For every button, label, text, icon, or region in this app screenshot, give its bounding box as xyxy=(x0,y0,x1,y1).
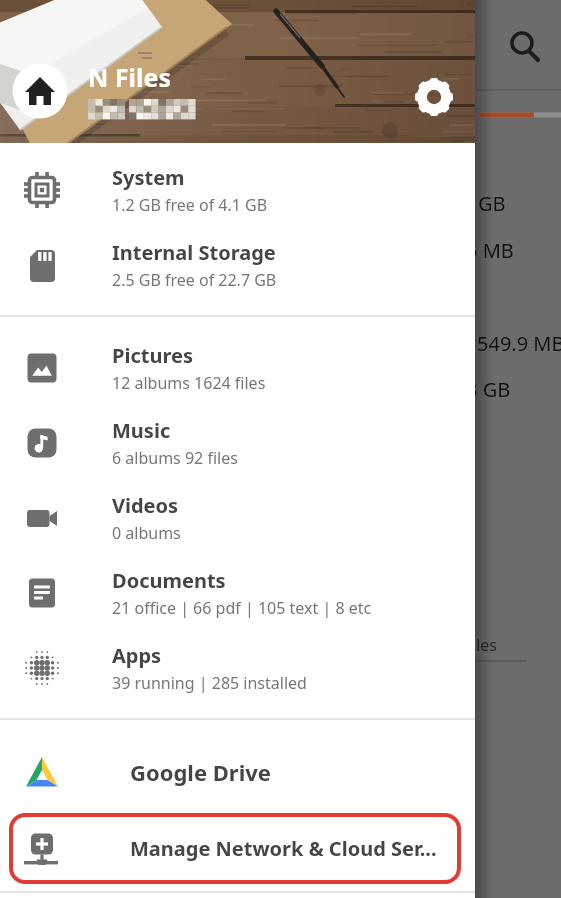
staticText: 5 MB xyxy=(466,237,514,264)
staticText: 2.5 GB free of 22.7 GB xyxy=(112,269,277,291)
button[interactable]: System xyxy=(0,152,475,227)
button[interactable]: Apps xyxy=(0,630,475,705)
staticText: 1.2 GB free of 4.1 GB xyxy=(112,194,268,216)
staticText: System xyxy=(112,164,185,191)
staticText: Documents xyxy=(112,567,226,594)
button[interactable]: N Files xyxy=(0,0,475,143)
staticText: N Files xyxy=(88,60,171,94)
staticText: Google Drive xyxy=(130,757,271,787)
staticText: Videos xyxy=(112,492,179,519)
staticText: 0 albums xyxy=(112,522,181,544)
button[interactable]: Pictures xyxy=(0,330,475,405)
button[interactable]: Google Drive xyxy=(0,736,475,808)
staticText: 39 running | 285 installed xyxy=(112,672,307,694)
staticText: Internal Storage xyxy=(112,239,276,266)
staticText: 3 GB xyxy=(466,376,511,403)
button[interactable]: Manage Network & Cloud Ser... xyxy=(9,813,461,884)
staticText: 21 office | 66 pdf | 105 text | 8 etc xyxy=(112,597,372,619)
button[interactable]: Videos xyxy=(0,480,475,555)
staticText: Music xyxy=(112,417,171,444)
button[interactable]: Internal Storage xyxy=(0,227,475,302)
staticText: Manage Network & Cloud Ser... xyxy=(130,835,437,862)
staticText: 12 albums 1624 files xyxy=(112,372,266,394)
staticText: iles xyxy=(472,634,497,656)
button[interactable]: Documents xyxy=(0,555,475,630)
staticText: GB xyxy=(478,190,506,217)
button[interactable]: Music xyxy=(0,405,475,480)
staticText: Pictures xyxy=(112,342,193,369)
staticText: 6 albums 92 files xyxy=(112,447,238,469)
staticText: 549.9 MB xyxy=(477,330,561,357)
staticText: Apps xyxy=(112,642,162,669)
